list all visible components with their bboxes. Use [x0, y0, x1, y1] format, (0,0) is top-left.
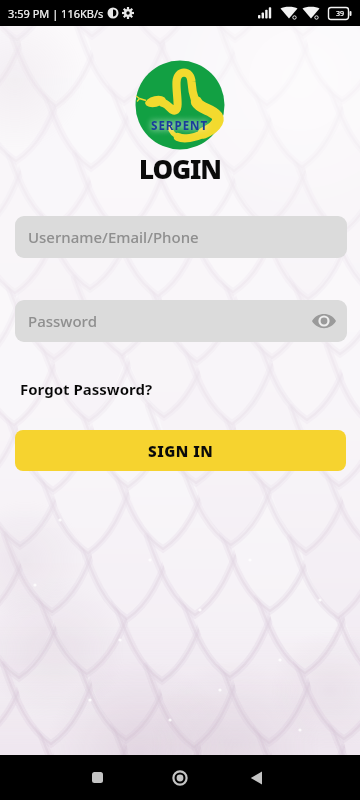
button[interactable]: Username/Email/Phone: [15, 216, 347, 258]
button[interactable]: [75, 755, 119, 800]
staticText: Forgot Password?: [20, 379, 153, 399]
staticText: SIGN IN: [148, 441, 214, 461]
staticText: 3:59 PM | 116KB/s: [8, 6, 104, 21]
staticText: LOGIN: [139, 151, 221, 186]
button[interactable]: SIGN IN: [15, 430, 346, 471]
button[interactable]: [158, 755, 202, 800]
button[interactable]: Forgot Password?: [20, 379, 153, 399]
staticText: Username/Email/Phone: [28, 227, 199, 247]
button[interactable]: [311, 308, 337, 334]
staticText: 39: [336, 9, 345, 19]
staticText: SERPENT: [151, 118, 209, 134]
button[interactable]: [235, 755, 279, 800]
button[interactable]: Password: [15, 300, 347, 342]
staticText: Password: [28, 311, 97, 331]
